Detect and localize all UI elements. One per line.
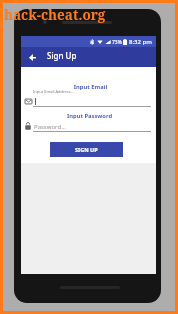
staticText: 8:32 pm (129, 38, 152, 46)
button[interactable]: Back (26, 51, 39, 64)
staticText: SIGN UP (75, 146, 98, 153)
staticText: hack-cheat.org (4, 6, 106, 24)
staticText: Input Password (22, 112, 157, 120)
staticText: Password... (34, 123, 66, 131)
staticText: 73% (112, 39, 122, 46)
button[interactable]: SIGN UP (50, 142, 123, 157)
staticText: Input Email Address... (33, 89, 74, 94)
staticText: Sign Up (47, 50, 77, 61)
staticText: Input Email (23, 83, 158, 91)
